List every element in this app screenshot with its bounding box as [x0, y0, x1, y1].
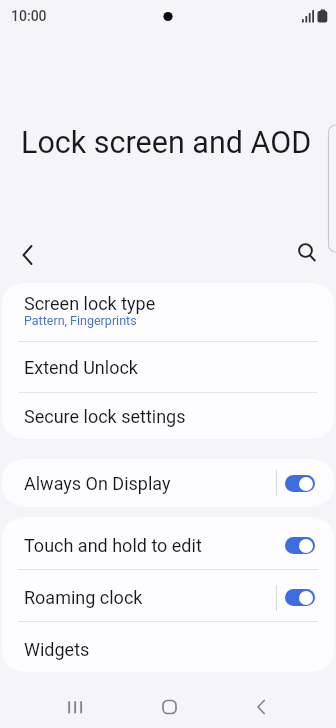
staticText: Screen lock type: [24, 293, 156, 314]
staticText: Roaming clock: [24, 587, 143, 608]
button[interactable]: [231, 686, 291, 728]
staticText: Lock screen and AOD: [21, 125, 312, 161]
button[interactable]: Secure lock settings: [2, 393, 334, 439]
staticText: Always On Display: [24, 473, 171, 494]
button[interactable]: Screen lock type: [2, 283, 334, 341]
button[interactable]: [45, 686, 105, 728]
button[interactable]: Always On Display: [2, 459, 334, 507]
staticText: Extend Unlock: [24, 357, 138, 378]
staticText: Pattern, Fingerprints: [24, 313, 137, 328]
button[interactable]: [286, 237, 322, 273]
button[interactable]: Touch and hold to edit: [2, 519, 334, 571]
button[interactable]: [10, 237, 46, 273]
staticText: 10:00: [11, 8, 47, 24]
button[interactable]: Extend Unlock: [2, 342, 334, 392]
staticText: Widgets: [24, 639, 90, 660]
button[interactable]: [138, 686, 198, 728]
button[interactable]: Widgets: [2, 624, 334, 672]
button[interactable]: Roaming clock: [2, 572, 334, 623]
staticText: Secure lock settings: [24, 406, 186, 427]
staticText: Touch and hold to edit: [24, 535, 202, 556]
